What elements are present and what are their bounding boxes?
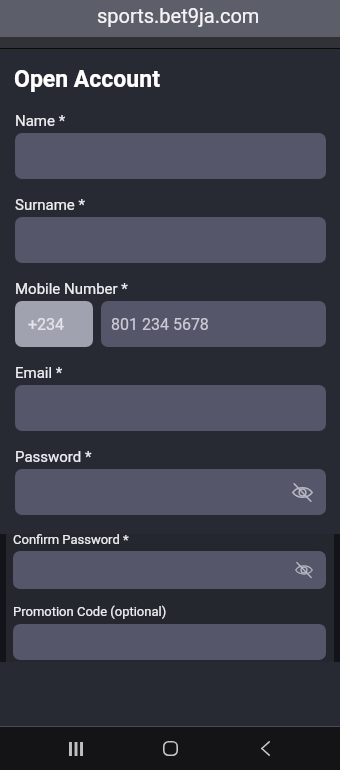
staticText: Name * [15, 112, 66, 130]
button[interactable] [13, 624, 326, 660]
button[interactable]: Toggle password visibility [15, 469, 326, 515]
button[interactable]: Recent apps [46, 727, 105, 770]
button[interactable]: Toggle password visibility [13, 551, 326, 589]
button[interactable]: Home [141, 727, 200, 770]
staticText: Surname * [15, 196, 85, 214]
staticText: Password * [15, 448, 92, 466]
staticText: Email * [15, 364, 63, 382]
staticText: Mobile Number * [15, 280, 128, 298]
staticText: Open Account [14, 66, 160, 93]
staticText: +234 [28, 315, 65, 334]
staticText: sports.bet9ja.com [97, 4, 260, 27]
staticText: Promotion Code (optional) [13, 604, 167, 619]
button[interactable]: +234 [15, 301, 93, 347]
button[interactable]: 801 234 5678 [101, 301, 326, 347]
staticText: 801 234 5678 [111, 315, 209, 334]
button[interactable]: Toggle password visibility [293, 559, 315, 581]
button[interactable]: sports.bet9ja.com [0, 0, 340, 37]
button[interactable]: Back [236, 727, 295, 770]
button[interactable]: Toggle password visibility [290, 480, 315, 505]
staticText: Confirm Password * [13, 534, 129, 547]
